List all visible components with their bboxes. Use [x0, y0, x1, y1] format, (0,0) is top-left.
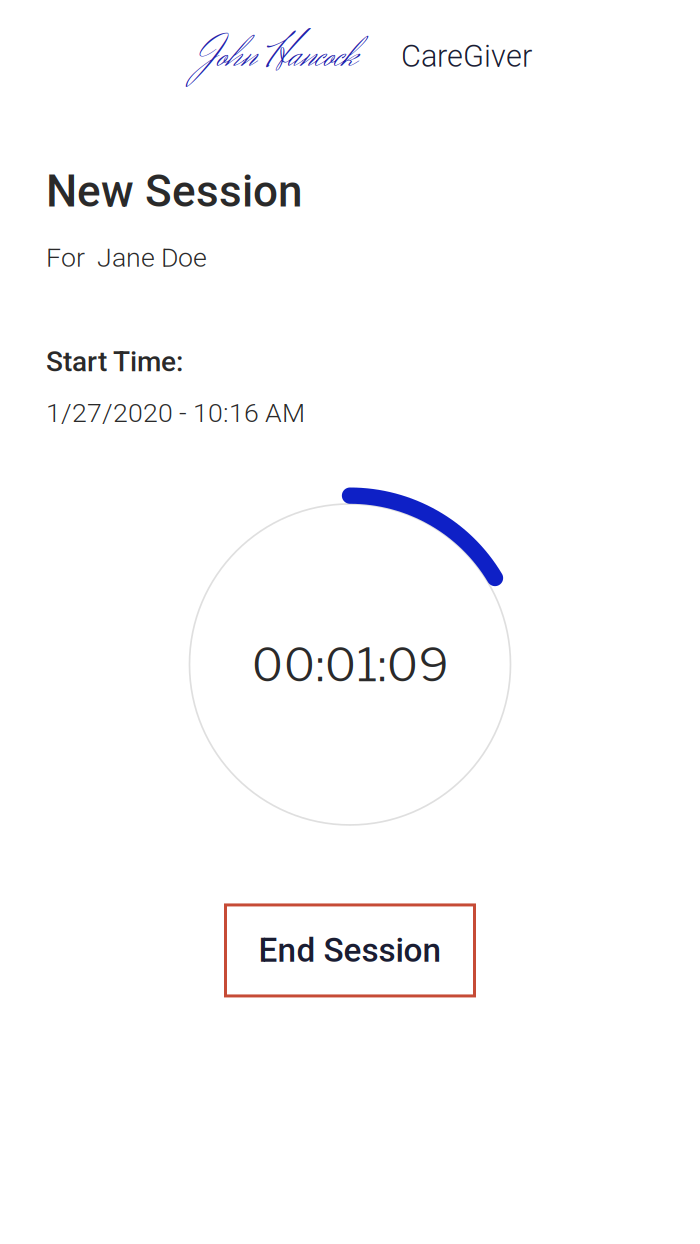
button[interactable]: End Session [224, 903, 476, 997]
staticText: CareGiver [401, 38, 532, 74]
staticText: 1/27/2020 - 10:16 AM [46, 397, 305, 428]
staticText: Start Time: [46, 345, 183, 378]
staticText: 00:01:09 [251, 636, 448, 693]
staticText: New Session [46, 166, 302, 217]
staticText: For Jane Doe [46, 242, 207, 273]
staticText: End Session [258, 931, 441, 970]
staticText: John Hancock [199, 25, 358, 88]
